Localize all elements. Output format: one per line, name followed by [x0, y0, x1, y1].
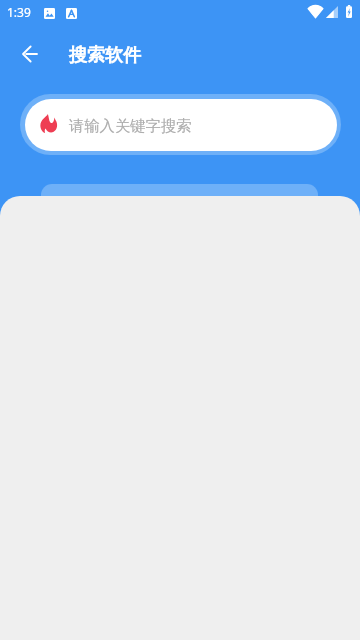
button[interactable]: 请输入关键字搜索 — [25, 99, 337, 151]
button[interactable]: Back — [10, 34, 50, 74]
staticText: 搜索软件 — [69, 44, 141, 67]
staticText: 请输入关键字搜索 — [69, 116, 192, 135]
staticText: 1:39 — [7, 4, 31, 20]
